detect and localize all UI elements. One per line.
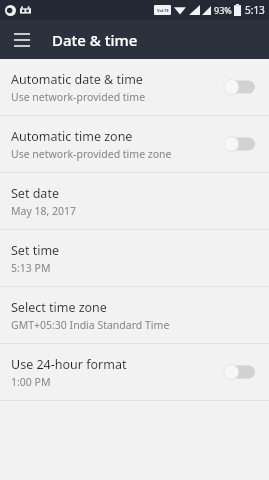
button[interactable]: Set date — [0, 173, 269, 229]
staticText: Select time zone — [11, 299, 107, 316]
button[interactable]: Automatic date & time — [0, 59, 269, 115]
staticText: May 18, 2017 — [11, 204, 77, 218]
staticText: VoLTE — [157, 8, 169, 13]
button[interactable]: Set time — [0, 230, 269, 286]
button[interactable]: Toggle Automatic time zone — [219, 130, 259, 158]
staticText: 5:13 — [245, 3, 265, 17]
staticText: Automatic date & time — [11, 71, 143, 88]
staticText: 1:00 PM — [11, 375, 51, 389]
button[interactable]: Open navigation menu — [6, 24, 38, 56]
staticText: Set time — [11, 242, 60, 259]
staticText: Date & time — [52, 30, 138, 50]
staticText: Use network-provided time zone — [11, 147, 172, 161]
staticText: Use network-provided time — [11, 90, 146, 104]
button[interactable]: Toggle Automatic date & time — [219, 73, 259, 101]
button[interactable]: Select time zone — [0, 287, 269, 343]
button[interactable]: Toggle Use 24-hour format — [219, 358, 259, 386]
staticText: 93% — [214, 4, 232, 16]
button[interactable]: Use 24-hour format — [0, 344, 269, 400]
staticText: Use 24-hour format — [11, 356, 127, 373]
staticText: GMT+05:30 India Standard Time — [11, 318, 170, 332]
staticText: Set date — [11, 185, 59, 202]
staticText: 5:13 PM — [11, 261, 51, 275]
button[interactable]: Automatic time zone — [0, 116, 269, 172]
staticText: Automatic time zone — [11, 128, 133, 145]
